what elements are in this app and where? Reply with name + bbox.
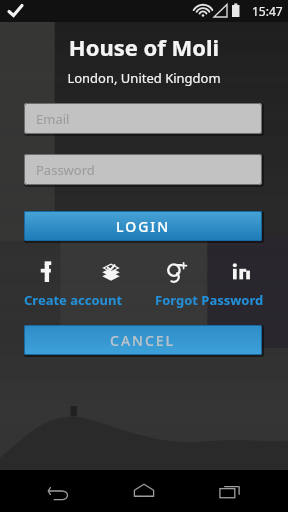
- button[interactable]: Sign in with Facebook: [30, 256, 62, 286]
- staticText: Create account: [24, 291, 123, 309]
- button[interactable]: Back: [32, 470, 86, 512]
- staticText: London, United Kingdom: [0, 69, 288, 87]
- button[interactable]: Home: [117, 470, 171, 512]
- staticText: Email: [36, 110, 70, 128]
- button[interactable]: Email: [24, 103, 262, 134]
- button[interactable]: Create account: [16, 288, 131, 312]
- staticText: LOGIN: [116, 217, 171, 236]
- button[interactable]: Sign in with Google Plus: [161, 256, 193, 286]
- staticText: Password: [36, 161, 95, 179]
- button[interactable]: Recent apps: [203, 470, 257, 512]
- staticText: House of Moli: [0, 32, 288, 62]
- button[interactable]: CANCEL: [24, 325, 262, 355]
- staticText: Forgot Password: [155, 291, 264, 309]
- staticText: CANCEL: [110, 331, 176, 350]
- staticText: 15:47: [252, 3, 283, 19]
- button[interactable]: Password: [24, 154, 262, 185]
- button[interactable]: Forgot Password: [147, 288, 272, 312]
- button[interactable]: Sign in with LinkedIn: [226, 256, 258, 286]
- button[interactable]: Sign in with Foursquare: [95, 256, 127, 286]
- button[interactable]: LOGIN: [24, 211, 262, 241]
